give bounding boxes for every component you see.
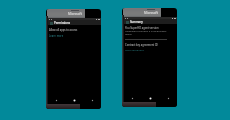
button[interactable]: Open navigation menu: [125, 20, 129, 24]
staticText: Microsoft: [144, 11, 158, 15]
staticText: Permissions: [54, 21, 71, 25]
button[interactable]: Recents: [159, 95, 177, 101]
staticText: Agreement connects a SUPERHDPRO: [125, 29, 167, 32]
button[interactable]: Back: [48, 97, 65, 103]
button[interactable]: Recents: [83, 97, 101, 103]
button[interactable]: Home: [65, 97, 83, 103]
staticText: Summary: [130, 20, 143, 24]
button[interactable]: Home: [141, 95, 159, 101]
staticText: Microsoft: [68, 12, 82, 16]
staticText: Allow all apps to access: [49, 28, 78, 32]
button[interactable]: Back: [124, 95, 141, 101]
staticText: Meter: [125, 32, 132, 35]
staticText: Learn more: [49, 34, 64, 38]
staticText: Contract key agreement ID: [125, 43, 158, 47]
staticText: Learn more here: [125, 48, 144, 51]
staticText: You SuperHD agent version: [125, 26, 159, 30]
button[interactable]: Open navigation menu: [49, 21, 53, 25]
